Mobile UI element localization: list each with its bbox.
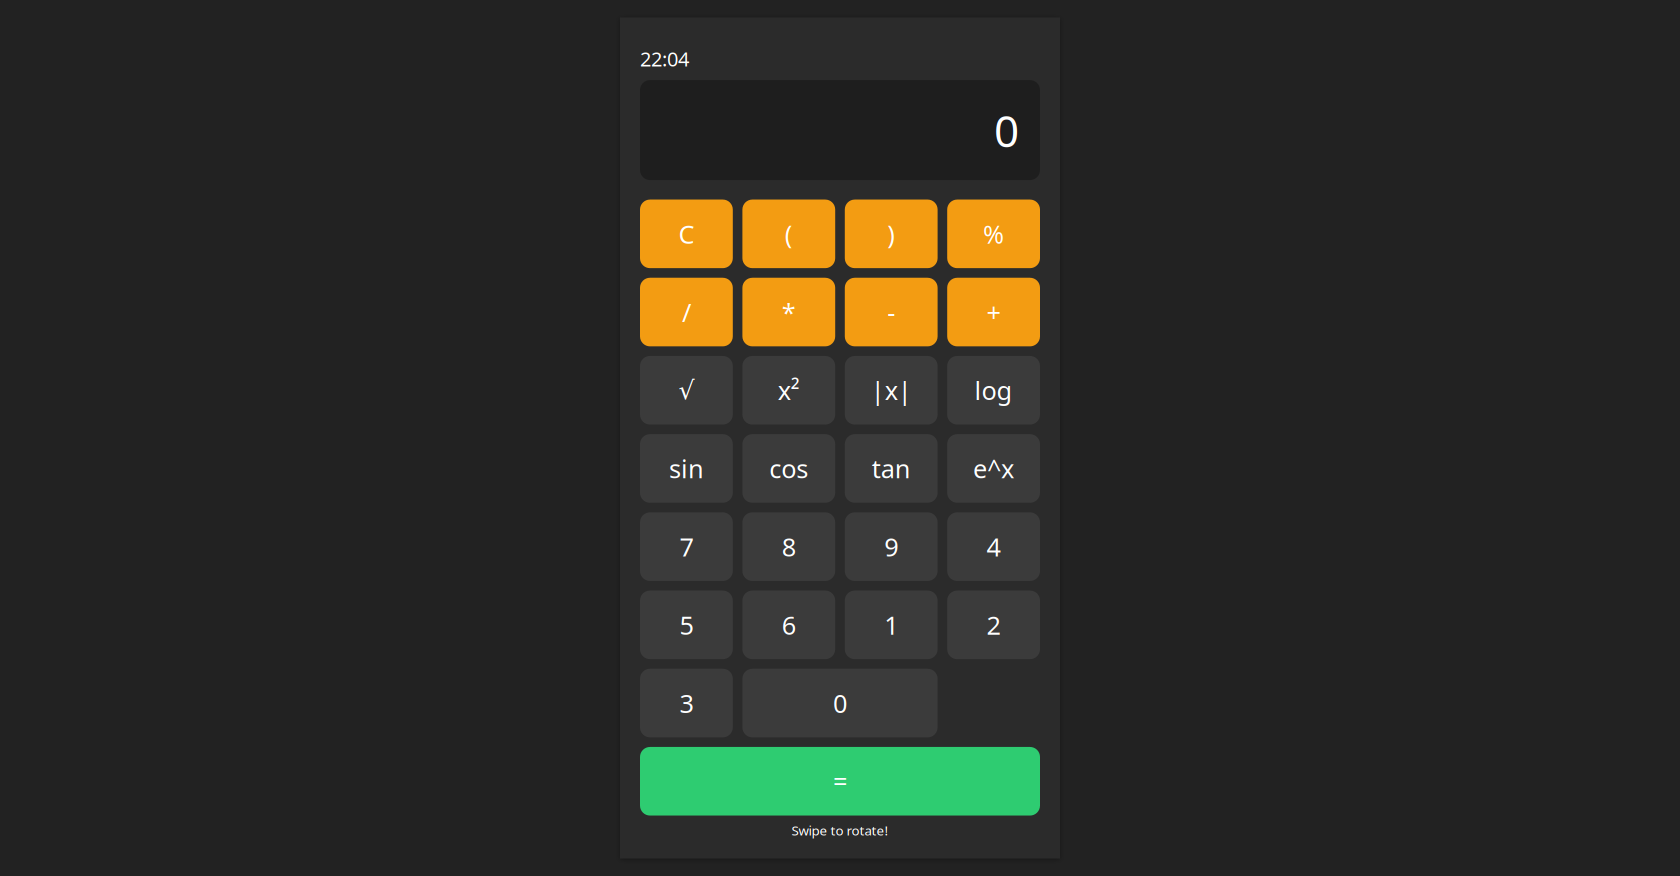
staticText: sin [669, 452, 704, 485]
staticText: - [887, 295, 895, 329]
button[interactable]: log [947, 356, 1040, 425]
staticText: 5 [679, 608, 693, 642]
staticText: C [678, 217, 694, 251]
staticText: 6 [782, 608, 796, 642]
button[interactable]: 7 [640, 512, 733, 581]
button[interactable]: ( [742, 200, 835, 268]
staticText: 4 [987, 530, 1001, 563]
button[interactable]: cos [742, 434, 835, 503]
staticText: x² [778, 373, 800, 407]
staticText: ( [785, 217, 793, 251]
button[interactable]: x² [742, 356, 835, 425]
button[interactable]: 4 [947, 512, 1040, 581]
staticText: 0 [994, 101, 1019, 159]
staticText: √ [678, 376, 694, 405]
staticText: 2 [987, 608, 1001, 642]
staticText: e^x [973, 452, 1014, 485]
staticText: 9 [884, 530, 898, 563]
button[interactable]: sin [640, 434, 733, 503]
staticText: tan [872, 452, 911, 485]
staticText: * [782, 295, 796, 329]
button[interactable]: = [640, 747, 1040, 816]
button[interactable]: 3 [640, 669, 733, 737]
button[interactable]: * [742, 278, 835, 346]
staticText: 1 [884, 608, 898, 642]
button[interactable]: 0 [742, 669, 938, 737]
button[interactable]: C [640, 200, 733, 268]
button[interactable]: √ [640, 356, 733, 425]
staticText: 22:04 [640, 45, 689, 72]
button[interactable]: / [640, 278, 733, 346]
staticText: 8 [782, 530, 796, 563]
staticText: % [983, 217, 1004, 251]
staticText: ) [887, 217, 895, 251]
staticText: Swipe to rotate! [791, 822, 888, 839]
staticText: 7 [679, 530, 693, 563]
staticText: log [975, 373, 1013, 407]
button[interactable]: e^x [947, 434, 1040, 503]
button[interactable]: 9 [845, 512, 938, 581]
button[interactable]: 2 [947, 591, 1040, 659]
button[interactable]: % [947, 200, 1040, 268]
staticText: cos [769, 452, 808, 485]
button[interactable]: 1 [845, 591, 938, 659]
button[interactable]: ) [845, 200, 938, 268]
button[interactable]: + [947, 278, 1040, 346]
button[interactable]: 5 [640, 591, 733, 659]
staticText: |x| [871, 373, 912, 407]
button[interactable]: tan [845, 434, 938, 503]
button[interactable]: |x| [845, 356, 938, 425]
button[interactable]: 8 [742, 512, 835, 581]
staticText: = [833, 764, 847, 798]
button[interactable]: - [845, 278, 938, 346]
staticText: 3 [679, 686, 693, 720]
staticText: + [987, 295, 1001, 329]
staticText: / [682, 295, 691, 329]
staticText: 0 [833, 686, 847, 720]
button[interactable]: 6 [742, 591, 835, 659]
